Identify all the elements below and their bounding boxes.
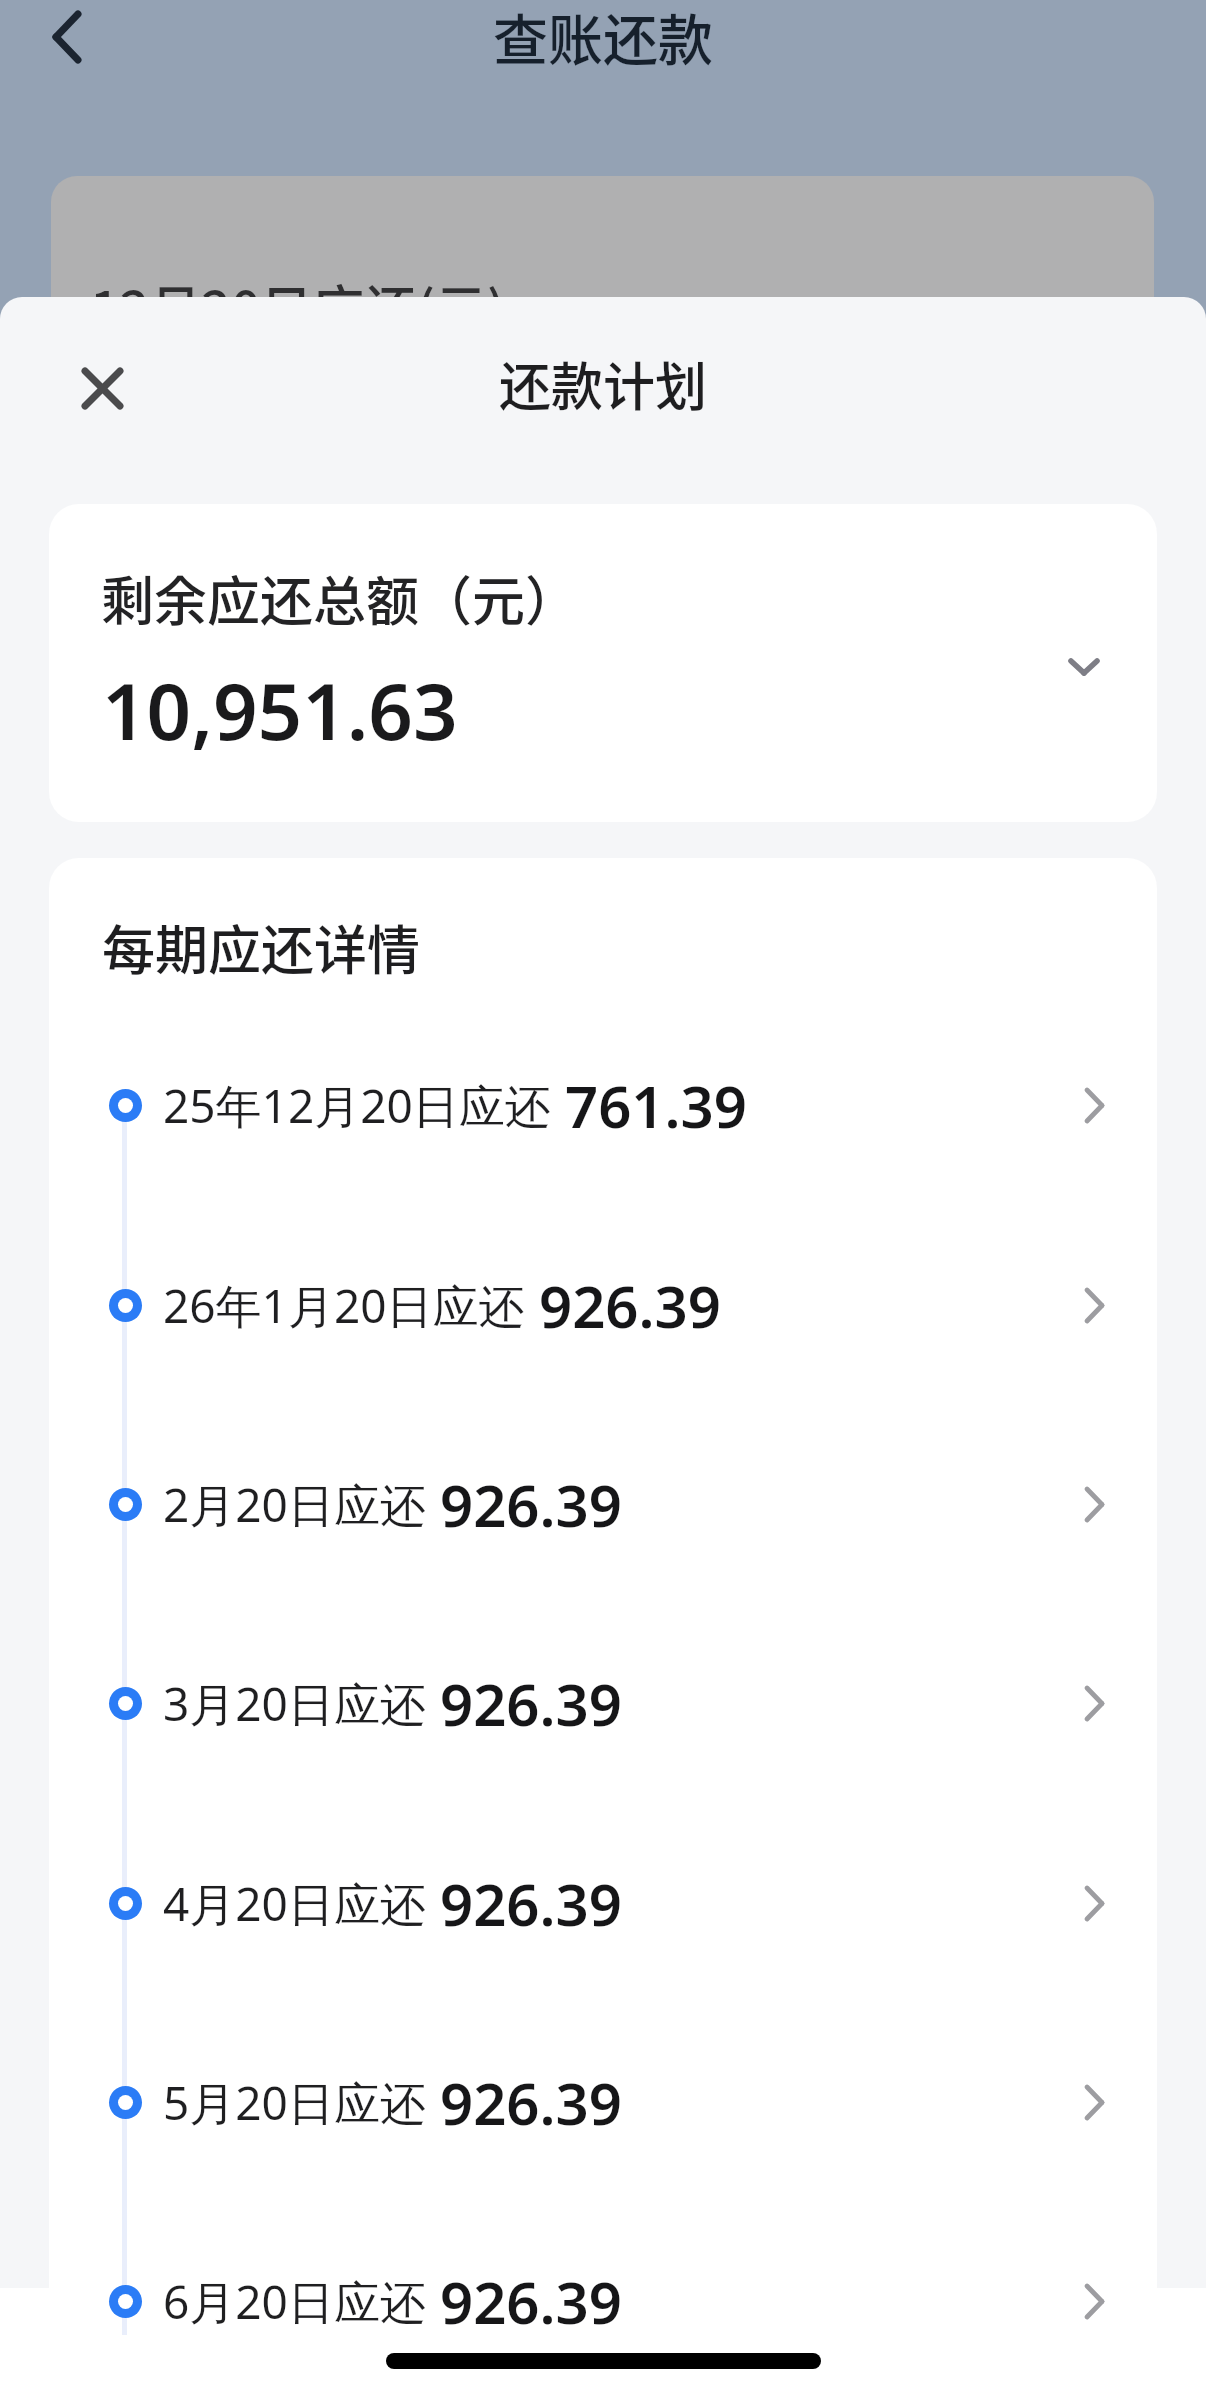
staticText: 26年1月20日应还 [163,1274,525,1337]
staticText: 10,951.63 [102,657,458,763]
staticText: 2月20日应还 [163,1473,426,1536]
staticText: 761.39 [565,1066,747,1145]
button[interactable]: 6月20日应还 [49,2202,1157,2394]
button[interactable]: 26年1月20日应还 [49,1206,1157,1405]
staticText: 25年12月20日应还 [163,1074,551,1137]
button[interactable]: 2月20日应还 [49,1405,1157,1604]
button[interactable]: 25年12月20日应还 [49,1006,1157,1205]
staticText: 还款计划 [0,346,1206,421]
staticText: 926.39 [539,1266,721,1345]
staticText: 3月20日应还 [163,1672,426,1735]
button[interactable]: 5月20日应还 [49,2003,1157,2202]
staticText: 926.39 [440,1664,622,1743]
staticText: 926.39 [440,1465,622,1544]
button[interactable]: 4月20日应还 [49,1804,1157,2003]
staticText: 剩余应还总额（元） [101,560,578,637]
staticText: 每期应还详情 [102,909,420,986]
staticText: 5月20日应还 [163,2071,426,2134]
button[interactable]: Back [36,6,98,68]
staticText: 926.39 [440,1864,622,1943]
button[interactable]: Close [66,352,139,425]
staticText: 926.39 [440,2262,622,2341]
staticText: 4月20日应还 [163,1872,426,1935]
staticText: 查账还款 [0,0,1206,76]
staticText: 12月20日应还(元) [90,269,506,344]
button[interactable]: 剩余应还总额（元） [49,504,1157,822]
button[interactable]: 3月20日应还 [49,1604,1157,1803]
staticText: 6月20日应还 [163,2270,426,2333]
staticText: 926.39 [440,2063,622,2142]
